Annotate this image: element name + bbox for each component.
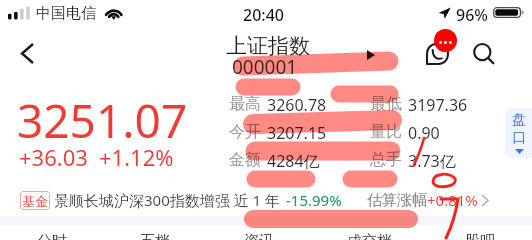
staticText: 今开 bbox=[229, 122, 261, 142]
staticText: 估算涨幅 bbox=[367, 191, 427, 210]
button[interactable]: 五档 bbox=[140, 232, 170, 240]
staticText: 景顺长城沪深300指数增强 近 1 年 bbox=[54, 190, 281, 210]
staticText: +0.81% bbox=[427, 190, 478, 210]
staticText: 股吧 bbox=[465, 232, 495, 240]
button[interactable]: Search bbox=[464, 34, 506, 76]
staticText: +1.12% bbox=[99, 142, 174, 172]
staticText: 总手 bbox=[370, 150, 402, 170]
staticText: 96% bbox=[456, 4, 488, 26]
staticText: 000001 bbox=[232, 54, 298, 80]
staticText: 口 bbox=[512, 129, 526, 147]
staticText: 量比 bbox=[370, 122, 402, 142]
staticText: +36.03 bbox=[19, 142, 88, 172]
staticText: 五档 bbox=[140, 232, 170, 240]
button[interactable]: 分时 bbox=[37, 232, 67, 240]
button[interactable]: Back bbox=[4, 30, 52, 78]
staticText: 盘 bbox=[512, 111, 526, 129]
staticText: 基金 bbox=[22, 193, 48, 209]
button[interactable]: 盘 bbox=[505, 108, 532, 158]
button[interactable]: 基金 bbox=[0, 188, 532, 212]
staticText: 上证指数 bbox=[226, 33, 310, 59]
staticText: 最低 bbox=[370, 94, 402, 114]
button[interactable]: 股吧 bbox=[465, 232, 495, 240]
staticText: 3251.07 bbox=[17, 89, 188, 152]
button[interactable]: 成交档 bbox=[347, 232, 392, 240]
staticText: 20:40 bbox=[243, 4, 284, 26]
staticText: 中国电信 bbox=[36, 4, 96, 23]
staticText: 3197.36 bbox=[408, 94, 468, 116]
staticText: 分时 bbox=[37, 232, 67, 240]
button[interactable]: Customer service bbox=[416, 32, 458, 74]
staticText: 3.73亿 bbox=[408, 150, 456, 172]
button[interactable]: 资讯 bbox=[244, 232, 274, 240]
staticText: 金额 bbox=[229, 150, 261, 170]
staticText: 0.90 bbox=[408, 122, 440, 144]
staticText: 4284亿 bbox=[267, 150, 320, 172]
staticText: -15.99% bbox=[286, 190, 342, 210]
staticText: 3260.78 bbox=[267, 94, 327, 116]
staticText: 成交档 bbox=[347, 232, 392, 240]
staticText: 资讯 bbox=[244, 232, 274, 240]
staticText: 3207.15 bbox=[267, 122, 327, 144]
staticText: 最高 bbox=[229, 94, 261, 114]
